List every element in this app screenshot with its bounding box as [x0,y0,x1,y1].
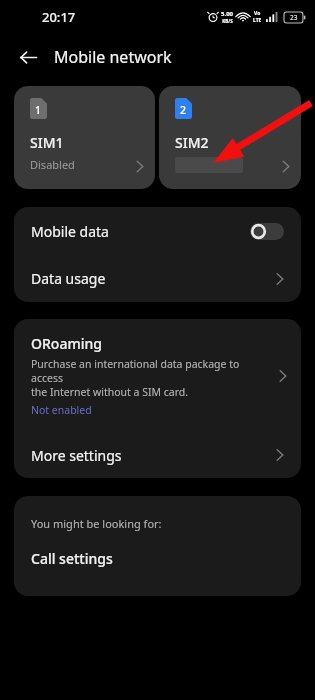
button[interactable]: More settings [14,432,301,478]
staticText: SIM1 [30,133,64,152]
staticText: Mobile data [31,222,250,241]
button[interactable]: Data usage [14,255,301,302]
staticText: KB/S [222,18,233,24]
staticText: More settings [31,446,276,465]
staticText: Vo [254,10,261,17]
staticText: 1 [35,103,42,117]
staticText: Call settings [31,549,113,568]
button[interactable]: Mobile data [14,207,301,255]
button[interactable]: 1 [14,86,155,189]
button[interactable]: ORoaming [14,319,301,432]
staticText: 2 [180,103,187,117]
staticText: You might be looking for: [31,516,162,531]
staticText: Disabled [30,157,75,172]
staticText: LTE [253,17,262,24]
staticText: Not enabled [31,403,92,417]
staticText: 5.00 [221,10,233,18]
button[interactable]: Back [8,37,48,77]
button[interactable]: Mobile data toggle [250,223,284,240]
button[interactable]: Call settings [14,531,301,596]
staticText: Data usage [31,269,276,288]
staticText: ORoaming [31,334,102,353]
button[interactable]: 2 [159,86,301,189]
staticText: Mobile network [54,46,172,68]
staticText: SIM2 [175,133,209,152]
staticText: 20:17 [42,8,76,26]
staticText: 23 [290,13,298,22]
staticText: Purchase an international data package t… [31,357,273,399]
